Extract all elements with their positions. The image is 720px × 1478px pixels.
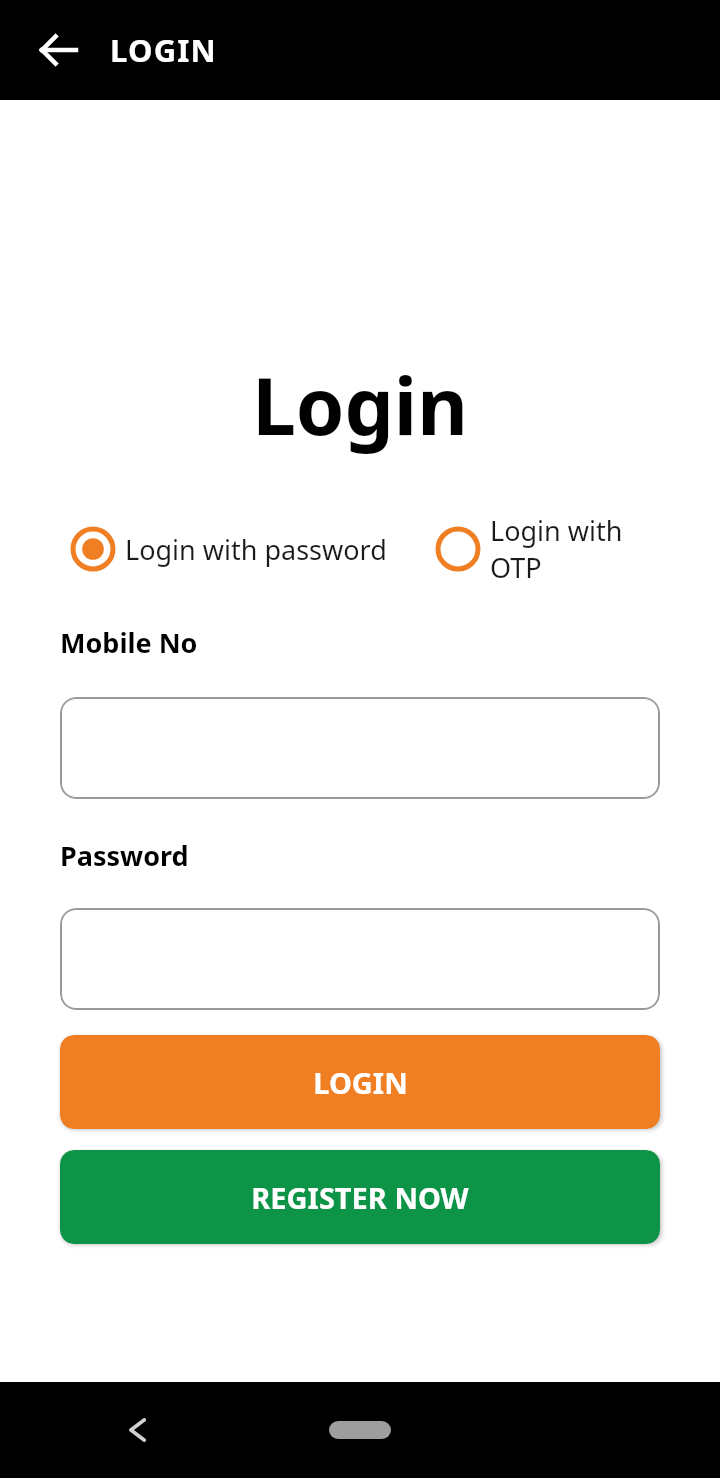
button[interactable]: Back: [30, 21, 88, 79]
button[interactable]: Login with OTP: [435, 512, 680, 586]
staticText: Login with password: [125, 531, 387, 568]
button[interactable]: REGISTER NOW: [60, 1150, 660, 1244]
staticText: Login with OTP: [490, 512, 680, 586]
other: Home: [329, 1421, 391, 1439]
staticText: LOGIN: [110, 29, 217, 71]
button[interactable]: [60, 697, 660, 799]
button[interactable]: LOGIN: [60, 1035, 660, 1129]
button[interactable]: Login with password: [70, 526, 387, 572]
staticText: Login: [0, 352, 720, 458]
staticText: LOGIN: [313, 1063, 408, 1102]
button[interactable]: [60, 908, 660, 1010]
staticText: Mobile No: [60, 624, 198, 661]
staticText: REGISTER NOW: [251, 1178, 469, 1217]
other: Back: [122, 1414, 154, 1446]
staticText: Password: [60, 837, 189, 874]
